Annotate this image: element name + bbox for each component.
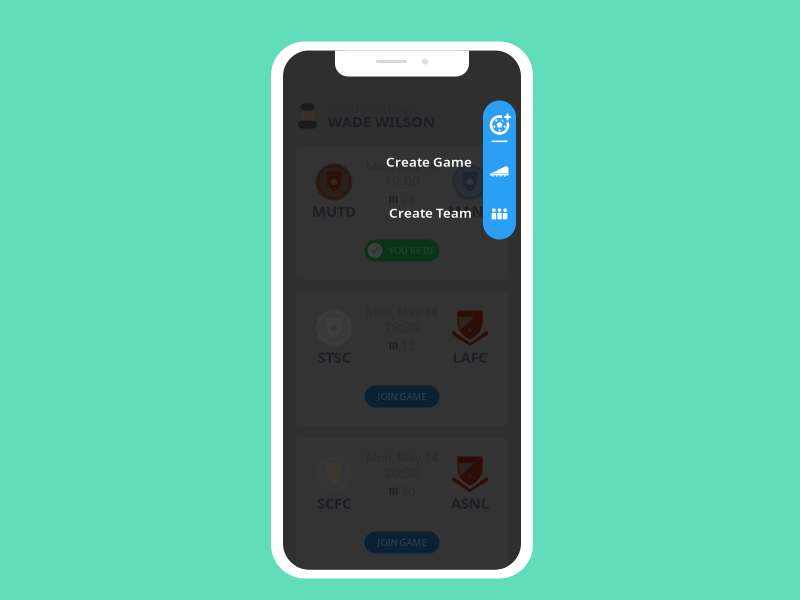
button[interactable]: Create Team [483, 199, 516, 223]
staticText: JOIN GAME [377, 536, 426, 549]
button[interactable]: JOIN GAME [364, 531, 439, 553]
button[interactable]: Create Team [352, 205, 472, 219]
staticText: JOIN GAME [377, 390, 426, 403]
staticText: Mon, May 14 [366, 157, 438, 173]
button[interactable]: YOU'RE IN [364, 239, 439, 261]
staticText: Create Game [386, 153, 472, 170]
staticText: MUTD [312, 201, 356, 221]
staticText: SCFC [317, 493, 351, 513]
staticText: STSC [317, 347, 350, 367]
staticText: YOU'RE IN [389, 244, 433, 257]
button[interactable]: Good afternoon [283, 100, 521, 130]
staticText: MANC [447, 201, 492, 221]
button[interactable]: Create Game [352, 154, 472, 168]
staticText: Create Team [389, 204, 472, 221]
staticText: ASNL [451, 493, 489, 513]
button[interactable]: Create Game [483, 159, 516, 183]
staticText: WADE WILSON [328, 112, 435, 131]
staticText: LAFC [452, 347, 487, 367]
button[interactable]: New [483, 109, 516, 140]
button[interactable]: JOIN GAME [364, 385, 439, 407]
